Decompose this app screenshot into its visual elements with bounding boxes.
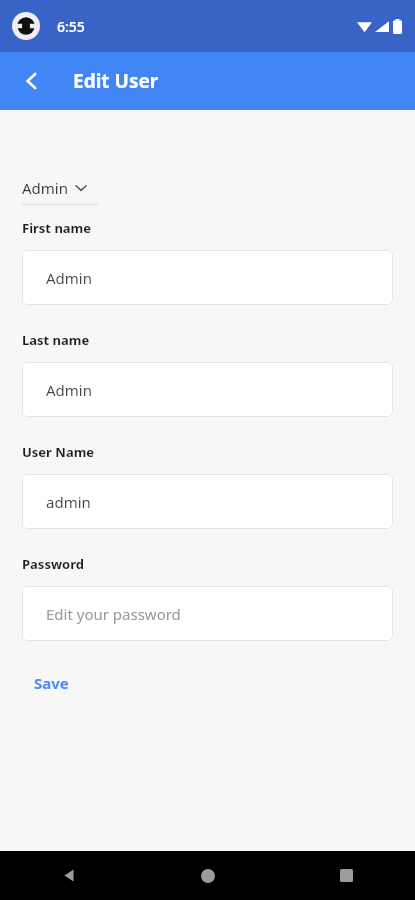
button[interactable]: Save: [22, 667, 81, 699]
staticText: Password: [22, 555, 84, 573]
staticText: User Name: [22, 443, 95, 461]
staticText: Admin: [46, 380, 92, 400]
staticText: admin: [46, 492, 91, 512]
button[interactable]: Admin: [22, 178, 98, 205]
button[interactable]: Edit your password: [22, 586, 393, 641]
button[interactable]: Home: [139, 851, 277, 900]
staticText: Edit User: [73, 68, 159, 94]
staticText: Admin: [22, 178, 68, 198]
staticText: Edit your password: [46, 604, 181, 624]
button[interactable]: Recent apps: [277, 851, 415, 900]
staticText: Admin: [46, 268, 92, 288]
button[interactable]: admin: [22, 474, 393, 529]
staticText: First name: [22, 219, 92, 237]
button[interactable]: Admin: [22, 250, 393, 305]
staticText: Save: [34, 673, 69, 693]
staticText: Last name: [22, 331, 90, 349]
button[interactable]: Back: [12, 61, 52, 101]
button[interactable]: Back: [0, 851, 139, 900]
staticText: 6:55: [57, 17, 85, 36]
button[interactable]: Admin: [22, 362, 393, 417]
